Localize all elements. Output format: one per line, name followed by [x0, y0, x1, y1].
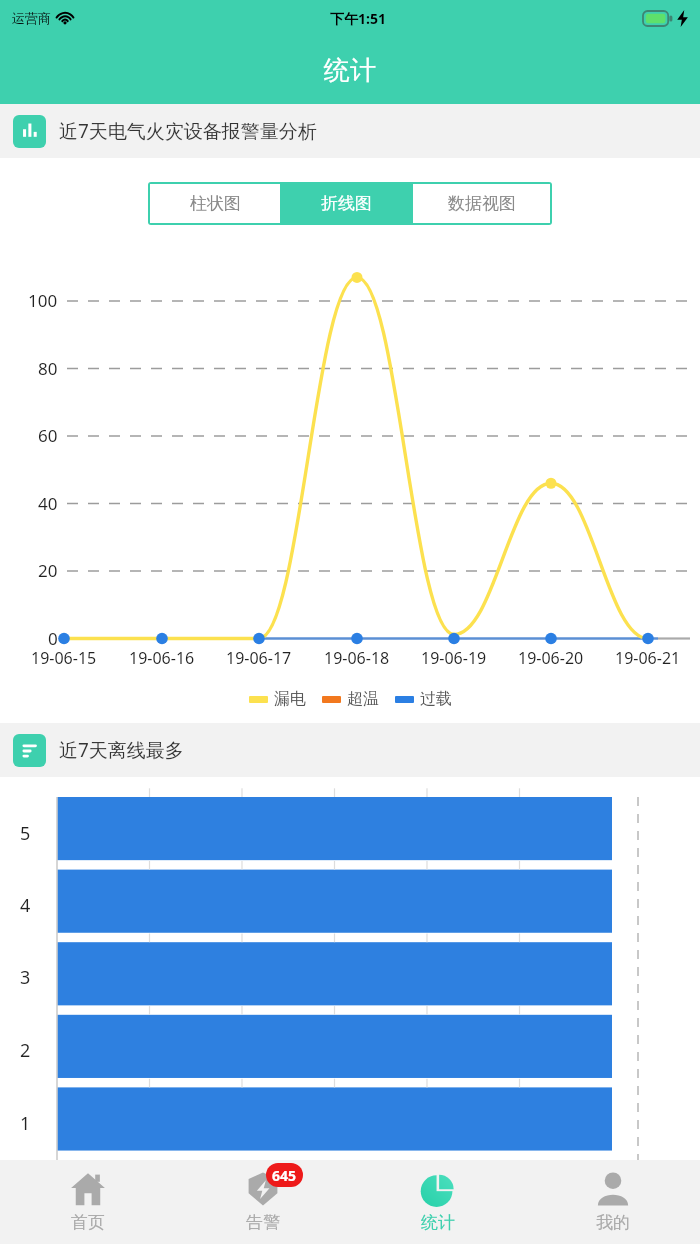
- staticText: 19-06-16: [129, 647, 195, 669]
- button[interactable]: 我的: [525, 1160, 700, 1244]
- staticText: 过载: [420, 689, 452, 709]
- staticText: 统计: [421, 1212, 455, 1233]
- staticText: 首页: [71, 1212, 105, 1233]
- button[interactable]: 近7天电气火灾设备报警量分析: [0, 104, 700, 158]
- staticText: 19-06-15: [31, 647, 97, 669]
- staticText: 折线图: [321, 193, 372, 214]
- staticText: 近7天电气火灾设备报警量分析: [59, 118, 317, 144]
- staticText: 数据视图: [448, 193, 516, 214]
- staticText: 3: [20, 965, 31, 990]
- button[interactable]: 近7天离线最多: [0, 723, 700, 777]
- staticText: 40: [38, 492, 58, 515]
- button[interactable]: 折线图: [282, 184, 411, 223]
- staticText: 100: [28, 289, 58, 312]
- staticText: 19-06-17: [226, 647, 292, 669]
- staticText: 19-06-18: [324, 647, 390, 669]
- staticText: 超温: [347, 689, 379, 709]
- staticText: 下午1:51: [330, 9, 386, 28]
- staticText: 19-06-21: [615, 647, 681, 669]
- other: 统计: [420, 1171, 456, 1207]
- staticText: 20: [38, 559, 58, 582]
- staticText: 645: [272, 1166, 297, 1185]
- button[interactable]: 告警: [175, 1160, 350, 1244]
- staticText: 19-06-20: [518, 647, 584, 669]
- other: 我的: [595, 1171, 631, 1207]
- staticText: 19-06-19: [421, 647, 487, 669]
- button[interactable]: 首页: [0, 1160, 175, 1244]
- staticText: 0: [48, 627, 58, 650]
- other: 首页: [70, 1171, 106, 1207]
- staticText: 统计: [324, 54, 376, 87]
- button[interactable]: 统计: [350, 1160, 525, 1244]
- staticText: 1: [20, 1111, 31, 1136]
- staticText: 运营商: [12, 10, 51, 26]
- staticText: 2: [20, 1038, 31, 1063]
- staticText: 近7天离线最多: [59, 737, 184, 763]
- button[interactable]: 柱状图: [150, 184, 280, 223]
- staticText: 60: [38, 424, 58, 447]
- staticText: 5: [20, 821, 31, 846]
- staticText: 告警: [246, 1212, 280, 1233]
- other: 告警: [245, 1171, 281, 1207]
- button[interactable]: 数据视图: [413, 184, 550, 223]
- staticText: 80: [38, 357, 58, 380]
- staticText: 我的: [596, 1212, 630, 1233]
- staticText: 4: [20, 893, 31, 918]
- staticText: 柱状图: [190, 193, 241, 214]
- staticText: 漏电: [274, 689, 306, 709]
